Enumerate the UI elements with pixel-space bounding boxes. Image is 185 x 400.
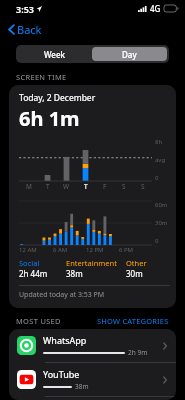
button[interactable]: Day bbox=[92, 47, 167, 61]
button[interactable]: Week bbox=[18, 47, 92, 61]
staticText: Social bbox=[19, 258, 40, 268]
staticText: Other bbox=[126, 258, 147, 268]
staticText: 0 bbox=[155, 174, 159, 182]
staticText: 38m bbox=[66, 268, 83, 279]
other: Open details bbox=[160, 341, 170, 351]
button[interactable]: Back bbox=[6, 20, 44, 39]
staticText: T bbox=[46, 182, 50, 191]
button[interactable]: WhatsApp bbox=[9, 329, 176, 362]
button[interactable]: SHOW CATEGORIES bbox=[97, 316, 169, 326]
staticText: 6 PM bbox=[119, 246, 134, 254]
staticText: 30m bbox=[155, 219, 168, 227]
button[interactable]: YouTube bbox=[9, 363, 176, 396]
staticText: Week bbox=[44, 49, 66, 60]
staticText: 38m bbox=[75, 382, 89, 391]
other: Open details bbox=[160, 375, 170, 385]
staticText: S bbox=[141, 182, 145, 191]
staticText: T bbox=[84, 182, 88, 191]
staticText: Entertainment bbox=[66, 258, 117, 268]
staticText: 60m bbox=[155, 201, 168, 209]
button[interactable]: Safari bbox=[9, 397, 176, 400]
staticText: 12 PM bbox=[86, 246, 104, 254]
staticText: 6h 1m bbox=[19, 105, 80, 132]
staticText: 0 bbox=[155, 237, 159, 245]
staticText: 4G bbox=[150, 3, 161, 14]
staticText: Updated today at 3:53 PM bbox=[19, 290, 105, 300]
staticText: 2h 44m bbox=[19, 268, 48, 279]
staticText: 30m bbox=[126, 268, 143, 279]
staticText: Back bbox=[17, 22, 42, 37]
staticText: W bbox=[63, 182, 70, 191]
staticText: 8h bbox=[155, 138, 163, 146]
staticText: YouTube bbox=[43, 368, 80, 380]
staticText: 6 AM bbox=[53, 246, 68, 254]
staticText: M bbox=[26, 182, 32, 191]
staticText: SCREEN TIME bbox=[16, 72, 67, 82]
staticText: WhatsApp bbox=[43, 334, 87, 346]
staticText: SHOW CATEGORIES bbox=[97, 316, 169, 326]
staticText: S bbox=[122, 182, 126, 191]
staticText: Today, 2 December bbox=[19, 92, 96, 104]
staticText: MOST USED bbox=[16, 316, 61, 326]
staticText: 12 AM bbox=[19, 246, 37, 254]
staticText: F bbox=[103, 182, 107, 191]
staticText: Day bbox=[122, 49, 137, 60]
staticText: 2h 9m bbox=[128, 348, 148, 357]
staticText: avg bbox=[155, 156, 166, 164]
staticText: 3:53 bbox=[16, 3, 34, 15]
